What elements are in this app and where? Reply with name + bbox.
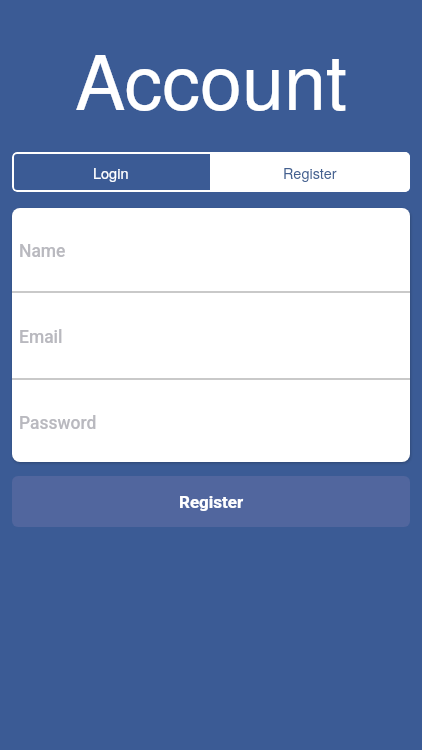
staticText: Name xyxy=(19,241,66,262)
staticText: Account xyxy=(0,23,422,131)
staticText: Register xyxy=(179,492,244,512)
staticText: Password xyxy=(19,413,97,434)
staticText: Login xyxy=(93,162,129,183)
button[interactable]: Password xyxy=(12,380,410,462)
button[interactable]: Name xyxy=(12,208,410,291)
button[interactable]: Register xyxy=(210,152,410,192)
button[interactable]: Login xyxy=(12,152,210,192)
staticText: Email xyxy=(19,327,63,348)
button[interactable]: Register xyxy=(12,476,410,527)
staticText: Register xyxy=(283,162,337,183)
button[interactable]: Email xyxy=(12,293,410,378)
